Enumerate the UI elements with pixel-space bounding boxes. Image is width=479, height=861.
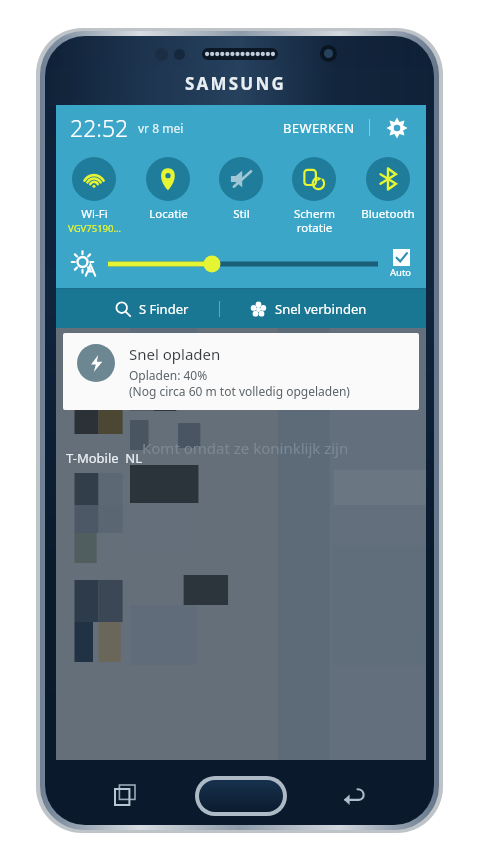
button[interactable]: Wi-Fi (59, 154, 129, 238)
button[interactable]: Settings (382, 113, 412, 143)
staticText: Bluetooth (361, 206, 415, 222)
button[interactable]: S Finder (107, 296, 197, 322)
staticText: Wi-Fi (81, 206, 108, 222)
button[interactable]: Scherm rotatie (279, 154, 349, 238)
staticText: (Nog circa 60 m tot volledig opgeladen) (129, 383, 350, 399)
staticText: Komt omdat ze koninklijk zijn (142, 438, 349, 458)
button[interactable]: Snel opladen (63, 333, 419, 410)
staticText: T-Mobile NL (66, 449, 143, 467)
button[interactable] (108, 252, 378, 276)
button[interactable]: BEWERKEN (279, 115, 359, 141)
button[interactable]: Back (337, 778, 371, 812)
staticText: BEWERKEN (283, 119, 355, 137)
button[interactable]: Locatie (133, 154, 203, 225)
staticText: Snel opladen (129, 344, 221, 364)
button[interactable]: Recents (108, 778, 142, 812)
button[interactable]: Bluetooth (353, 154, 423, 225)
staticText: Scherm rotatie (294, 206, 335, 235)
button[interactable]: Stil (206, 154, 276, 225)
staticText: VGV75190… (68, 222, 121, 235)
staticText: Opladen: 40% (129, 367, 208, 383)
staticText: Locatie (149, 206, 188, 222)
button[interactable]: Auto (390, 249, 412, 279)
staticText: vr 8 mei (138, 120, 184, 136)
button[interactable]: Snel verbinden (242, 296, 375, 322)
staticText: SAMSUNG (185, 72, 286, 95)
staticText: Stil (233, 206, 250, 222)
button[interactable]: Home (195, 776, 287, 816)
staticText: 22:52 (70, 112, 129, 143)
staticText: Auto (390, 266, 412, 279)
staticText: Snel verbinden (275, 300, 367, 318)
staticText: S Finder (139, 300, 189, 318)
